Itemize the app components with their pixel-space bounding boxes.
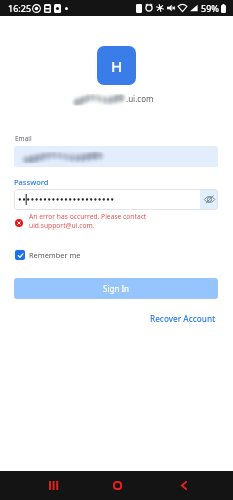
staticText: Password (14, 177, 49, 187)
button[interactable]: Home (97, 471, 137, 500)
staticText: Sign In (103, 283, 130, 294)
staticText: Email (15, 134, 32, 143)
staticText: An error has occurred. Please contact ui… (29, 212, 151, 230)
button[interactable] (14, 146, 218, 167)
button[interactable]: Show password (14, 189, 218, 210)
staticText: Remember me (29, 250, 81, 260)
button[interactable]: Remember me (15, 247, 81, 262)
staticText: 16:25 (8, 2, 32, 14)
staticText: H (111, 56, 123, 76)
staticText: 59% (201, 2, 219, 14)
button[interactable]: Recover Account (150, 313, 216, 324)
button[interactable]: Recents (33, 471, 73, 500)
button[interactable]: Show password (200, 189, 218, 210)
button[interactable]: Sign In (14, 278, 218, 299)
staticText: .ui.com (126, 93, 154, 104)
button[interactable]: Back (164, 471, 204, 500)
